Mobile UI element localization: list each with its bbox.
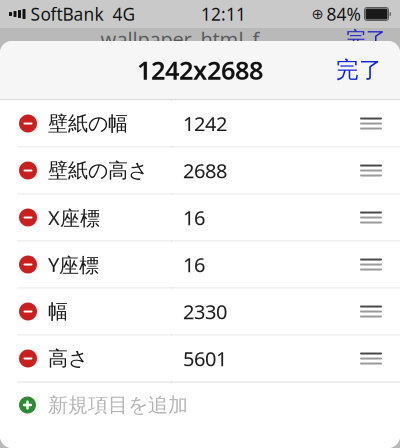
staticText: 幅 — [48, 299, 68, 324]
staticText: X座標 — [48, 204, 100, 231]
button[interactable]: 壁紙の幅 — [0, 100, 400, 146]
button[interactable]: 完了 — [324, 46, 394, 94]
staticText: 84% — [326, 2, 360, 25]
staticText: 12:11 — [201, 2, 246, 25]
staticText: 壁紙の幅 — [48, 111, 128, 136]
staticText: ⊕ — [311, 6, 323, 22]
staticText: SoftBank — [30, 2, 103, 25]
staticText: Y座標 — [48, 251, 99, 278]
staticText: wallpaper_html_f — [100, 26, 259, 52]
staticText: 新規項目を追加 — [48, 393, 188, 417]
staticText: 2330 — [183, 298, 227, 325]
button[interactable]: 壁紙の高さ — [0, 147, 400, 193]
button[interactable]: X座標 — [0, 194, 400, 240]
staticText: 完了 — [346, 27, 386, 51]
staticText: 1242x2688 — [137, 53, 263, 87]
staticText: 16 — [183, 204, 205, 231]
staticText: 1242 — [183, 110, 227, 137]
staticText: 2688 — [183, 157, 227, 184]
staticText: 16 — [183, 251, 205, 278]
button[interactable]: Y座標 — [0, 241, 400, 287]
staticText: 5601 — [183, 345, 227, 372]
staticText: 4G — [112, 2, 135, 25]
staticText: 高さ — [48, 346, 88, 371]
button[interactable]: 新規項目を追加 — [0, 383, 400, 427]
button[interactable]: 幅 — [0, 288, 400, 334]
staticText: 完了 — [336, 56, 382, 84]
button[interactable]: 高さ — [0, 335, 400, 381]
staticText: 壁紙の高さ — [48, 158, 148, 183]
